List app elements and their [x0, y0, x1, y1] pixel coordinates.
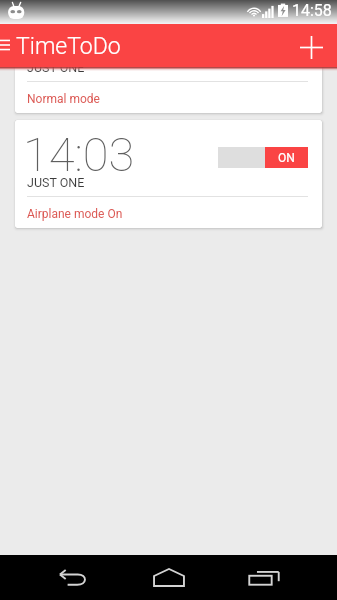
button[interactable]: Home [145, 555, 193, 600]
button[interactable]: 14:03 [15, 120, 322, 228]
staticText: 14:03 [23, 12, 135, 67]
staticText: Airplane mode On [27, 207, 123, 221]
staticText: 14:58 [292, 1, 332, 20]
staticText: TimeToDo [16, 33, 121, 60]
button[interactable]: Toggle alarm on [218, 32, 308, 53]
button[interactable]: Recent apps [240, 555, 288, 600]
button[interactable]: Add alarm [290, 24, 333, 67]
staticText: 14:03 [23, 127, 135, 182]
button[interactable]: Navigation menu [0, 24, 14, 67]
button[interactable]: Toggle alarm on [218, 147, 308, 168]
staticText: JUST ONE [27, 60, 85, 75]
button[interactable]: Back [50, 555, 98, 600]
staticText: ON [278, 151, 295, 165]
staticText: JUST ONE [27, 175, 85, 190]
button[interactable]: 14:03 [15, 5, 322, 113]
staticText: Normal mode [27, 92, 100, 106]
